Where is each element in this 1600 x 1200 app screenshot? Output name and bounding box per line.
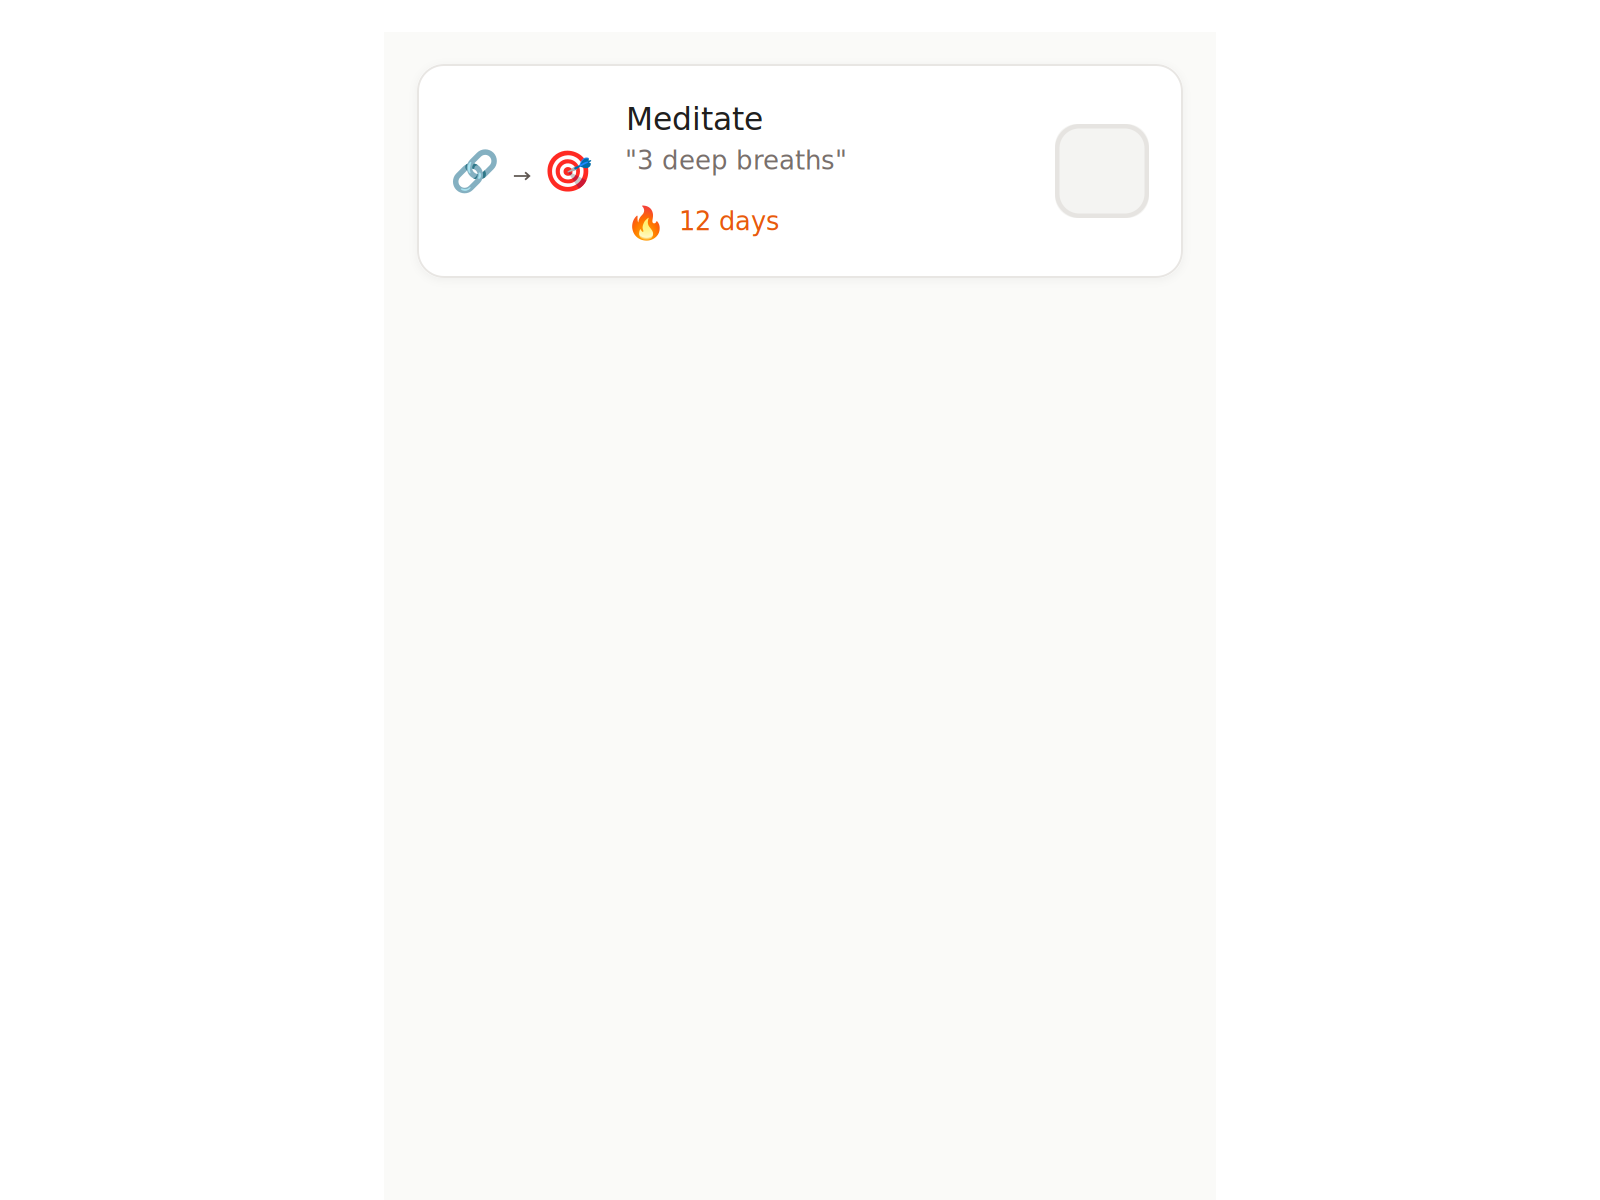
staticText: 🎯 xyxy=(543,148,593,194)
button[interactable]: Mark Meditate complete xyxy=(1055,124,1149,218)
staticText: "3 deep breaths" xyxy=(625,145,847,176)
staticText: 12 days xyxy=(679,206,779,236)
staticText: 🔥 xyxy=(626,205,666,242)
staticText: Meditate xyxy=(626,101,763,137)
staticText: 🔗 xyxy=(450,148,500,194)
button[interactable]: 🔗 xyxy=(384,64,1183,278)
